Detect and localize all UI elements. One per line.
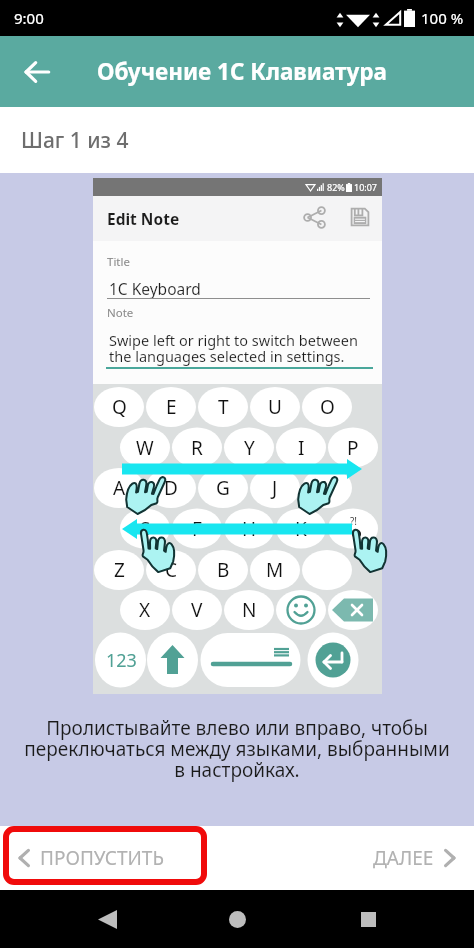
- staticText: 9:00: [14, 8, 44, 28]
- staticText: 123: [106, 648, 137, 673]
- button[interactable]: Home: [213, 895, 261, 943]
- staticText: 100 %: [421, 8, 464, 28]
- staticText: S: [140, 516, 151, 542]
- staticText: 82%: [327, 181, 345, 193]
- staticText: I: [298, 435, 305, 461]
- staticText: M: [266, 557, 284, 583]
- staticText: E: [166, 394, 177, 420]
- staticText: ?!: [350, 514, 358, 528]
- staticText: L: [322, 475, 332, 501]
- staticText: Swipe left or right to switch between th…: [109, 330, 358, 367]
- button[interactable]: ДАЛЕЕ: [373, 845, 460, 871]
- staticText: V: [191, 597, 203, 623]
- staticText: P: [347, 435, 359, 461]
- staticText: W: [136, 435, 154, 461]
- staticText: N: [242, 597, 257, 623]
- staticText: 1C Keyboard: [109, 278, 201, 299]
- button[interactable]: Recents: [344, 895, 392, 943]
- staticText: Y: [244, 435, 255, 461]
- staticText: F: [192, 516, 202, 542]
- staticText: ПРОПУСТИТЬ: [40, 845, 164, 871]
- staticText: G: [216, 475, 230, 501]
- staticText: ДАЛЕЕ: [373, 845, 434, 871]
- button[interactable]: ПРОПУСТИТЬ: [14, 845, 164, 871]
- staticText: X: [139, 597, 151, 623]
- staticText: H: [242, 516, 257, 542]
- staticText: 10:07: [354, 181, 378, 193]
- staticText: R: [191, 435, 203, 461]
- staticText: O: [320, 394, 335, 420]
- staticText: C: [165, 557, 178, 583]
- staticText: Шаг 1 из 4: [21, 126, 129, 155]
- staticText: Пролистывайте влево или вправо, чтобы пе…: [24, 715, 450, 783]
- staticText: Note: [107, 305, 134, 321]
- staticText: B: [217, 557, 230, 583]
- staticText: U: [268, 394, 282, 420]
- staticText: Обучение 1С Клавиатура: [97, 56, 388, 87]
- staticText: A: [113, 475, 126, 501]
- staticText: T: [218, 394, 229, 420]
- staticText: Z: [114, 557, 125, 583]
- staticText: J: [272, 475, 278, 501]
- button[interactable]: Back: [15, 50, 59, 94]
- staticText: Q: [112, 394, 127, 420]
- staticText: Title: [107, 254, 130, 270]
- button[interactable]: Back: [83, 895, 131, 943]
- staticText: D: [164, 475, 178, 501]
- staticText: K: [295, 516, 307, 542]
- staticText: Edit Note: [107, 208, 180, 229]
